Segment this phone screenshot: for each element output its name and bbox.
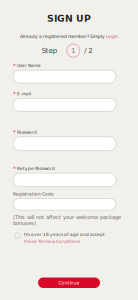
staticText: (This will not affect your welcome packa… bbox=[13, 214, 121, 226]
staticText: Step bbox=[42, 47, 57, 55]
staticText: * bbox=[13, 165, 16, 172]
button[interactable]: Continue bbox=[38, 277, 100, 288]
staticText: * bbox=[13, 129, 16, 135]
staticText: * bbox=[13, 62, 16, 69]
button[interactable] bbox=[13, 98, 116, 111]
staticText: Password bbox=[17, 130, 37, 135]
staticText: SIGN UP bbox=[47, 13, 91, 24]
staticText: 1 bbox=[71, 47, 75, 55]
staticText: Continue bbox=[58, 280, 79, 286]
button[interactable]: I'm over 18 years of age and accept bbox=[0, 232, 105, 244]
staticText: these Terms & Conditions bbox=[24, 239, 80, 244]
button[interactable]: Login bbox=[106, 34, 118, 39]
staticText: Already a registered member? Simply bbox=[20, 34, 105, 39]
staticText: / 2 bbox=[84, 47, 92, 55]
staticText: E-mail bbox=[17, 91, 31, 96]
button[interactable] bbox=[13, 137, 116, 151]
button[interactable] bbox=[13, 173, 116, 187]
staticText: Registration Code bbox=[13, 192, 54, 197]
button[interactable] bbox=[13, 70, 116, 83]
staticText: User Name bbox=[17, 63, 41, 68]
staticText: Retype Password bbox=[17, 166, 55, 171]
button[interactable] bbox=[13, 198, 116, 210]
staticText: I'm over 18 years of age and accept bbox=[24, 232, 105, 237]
staticText: Login bbox=[106, 34, 118, 39]
staticText: * bbox=[13, 91, 16, 97]
